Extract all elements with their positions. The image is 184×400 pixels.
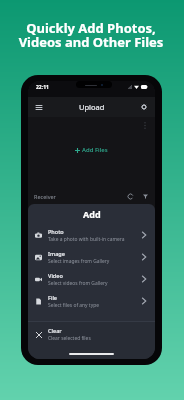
button[interactable]: Clear xyxy=(28,323,155,345)
button[interactable]: File xyxy=(28,290,155,312)
staticText: Video xyxy=(48,272,63,279)
staticText: Select images from Gallery xyxy=(48,258,110,265)
staticText: Select videos from Gallery xyxy=(48,280,108,287)
staticText: Upload xyxy=(79,102,105,112)
staticText: 22:11 xyxy=(36,84,49,91)
button[interactable]: Settings xyxy=(136,99,152,115)
button[interactable]: Image xyxy=(28,246,155,268)
staticText: Clear selected files xyxy=(48,335,91,342)
button[interactable]: Photo xyxy=(28,224,155,246)
button[interactable]: Open navigation menu xyxy=(31,99,47,115)
button[interactable]: Filter xyxy=(140,191,151,202)
staticText: Quickly Add Photos, Videos and Other Fil… xyxy=(0,19,183,51)
staticText: Take a photo with built-in camera xyxy=(48,236,125,243)
staticText: Select files of any type xyxy=(48,302,99,309)
staticText: Receiver xyxy=(34,193,56,200)
staticText: Image xyxy=(48,250,65,257)
button[interactable]: Video xyxy=(28,268,155,290)
staticText: Add xyxy=(83,208,101,220)
staticText: Clear xyxy=(48,327,62,334)
button[interactable]: Add Files xyxy=(71,144,112,156)
staticText: File xyxy=(48,294,58,301)
button[interactable]: Refresh xyxy=(125,191,136,202)
staticText: Add Files xyxy=(82,146,108,154)
staticText: Photo xyxy=(48,228,64,235)
button[interactable]: More options xyxy=(139,119,151,131)
